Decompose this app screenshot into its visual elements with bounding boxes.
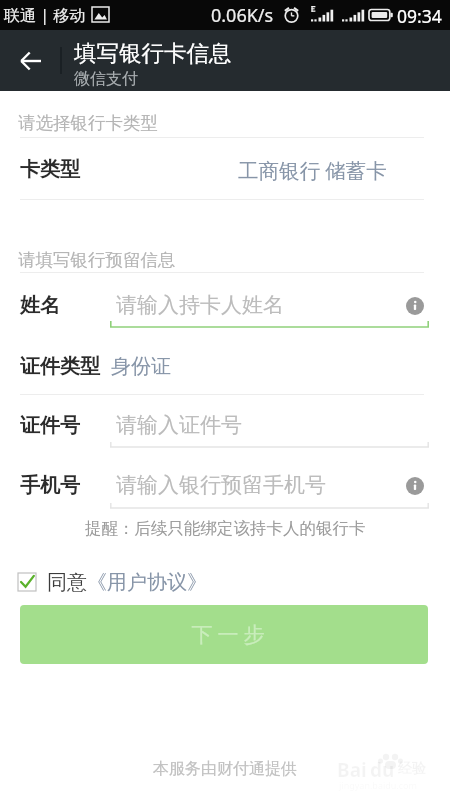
staticText: 本服务由财付通提供 [153, 759, 297, 779]
staticText: du [370, 757, 395, 783]
staticText: 《用户协议》 [87, 570, 207, 595]
staticText: 请选择银行卡类型 [18, 112, 158, 134]
staticText: 证件号 [20, 413, 80, 438]
staticText: 09:34 [397, 4, 442, 28]
staticText: 提醒：后续只能绑定该持卡人的银行卡 [85, 518, 366, 539]
staticText: 同意 [47, 570, 87, 595]
button[interactable]: 同意 [18, 567, 207, 597]
staticText: 微信支付 [74, 69, 138, 89]
staticText: 联通 | 移动 [4, 4, 86, 26]
button[interactable]: Back [0, 30, 58, 91]
button[interactable]: More information [406, 297, 424, 315]
button[interactable]: 下一步 [20, 605, 428, 664]
staticText: 请填写银行预留信息 [18, 249, 176, 271]
button[interactable]: 证件号 [0, 398, 450, 447]
staticText: 填写银行卡信息 [74, 39, 232, 67]
button[interactable]: 证件类型 [0, 340, 450, 394]
staticText: Bai [337, 757, 367, 783]
staticText: 请输入持卡人姓名 [116, 292, 284, 318]
staticText: 经验 [398, 760, 426, 778]
staticText: 下一步 [189, 622, 267, 648]
staticText: 请输入银行预留手机号 [116, 472, 326, 498]
staticText: 工商银行 储蓄卡 [238, 156, 387, 184]
staticText: 证件类型 [20, 354, 100, 379]
button[interactable]: 手机号 [0, 458, 450, 508]
button[interactable]: 姓名 [0, 276, 450, 328]
staticText: 0.06K/s [211, 3, 274, 28]
staticText: 姓名 [20, 293, 60, 318]
button[interactable]: 卡类型 [0, 138, 450, 199]
staticText: 请输入证件号 [116, 412, 242, 438]
button[interactable]: More information [406, 477, 424, 495]
staticText: 身份证 [111, 354, 171, 379]
staticText: 手机号 [20, 473, 80, 498]
staticText: 卡类型 [20, 157, 80, 182]
